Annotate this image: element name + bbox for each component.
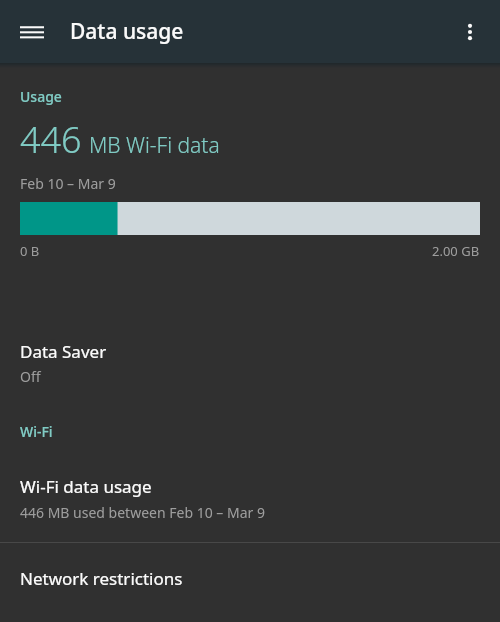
staticText: Usage <box>20 87 62 106</box>
staticText: 2.00 GB <box>432 242 480 260</box>
staticText: Network restrictions <box>20 567 183 590</box>
staticText: Data Saver <box>20 340 107 363</box>
button[interactable]: Wi-Fi data usage <box>0 473 500 524</box>
button[interactable]: More options <box>448 10 492 54</box>
staticText: Off <box>20 367 41 386</box>
staticText: 446 <box>20 115 82 164</box>
staticText: 446 MB used between Feb 10 – Mar 9 <box>20 503 265 522</box>
button[interactable]: Data Saver <box>0 338 500 388</box>
staticText: MB Wi-Fi data <box>89 131 220 160</box>
button[interactable]: Network restrictions <box>0 543 500 613</box>
staticText: Wi-Fi data usage <box>20 475 152 498</box>
staticText: 0 B <box>20 242 40 260</box>
staticText: Data usage <box>70 17 184 46</box>
button[interactable]: Open navigation menu <box>10 10 54 54</box>
staticText: Wi-Fi <box>20 422 53 441</box>
staticText: Feb 10 – Mar 9 <box>20 174 116 193</box>
